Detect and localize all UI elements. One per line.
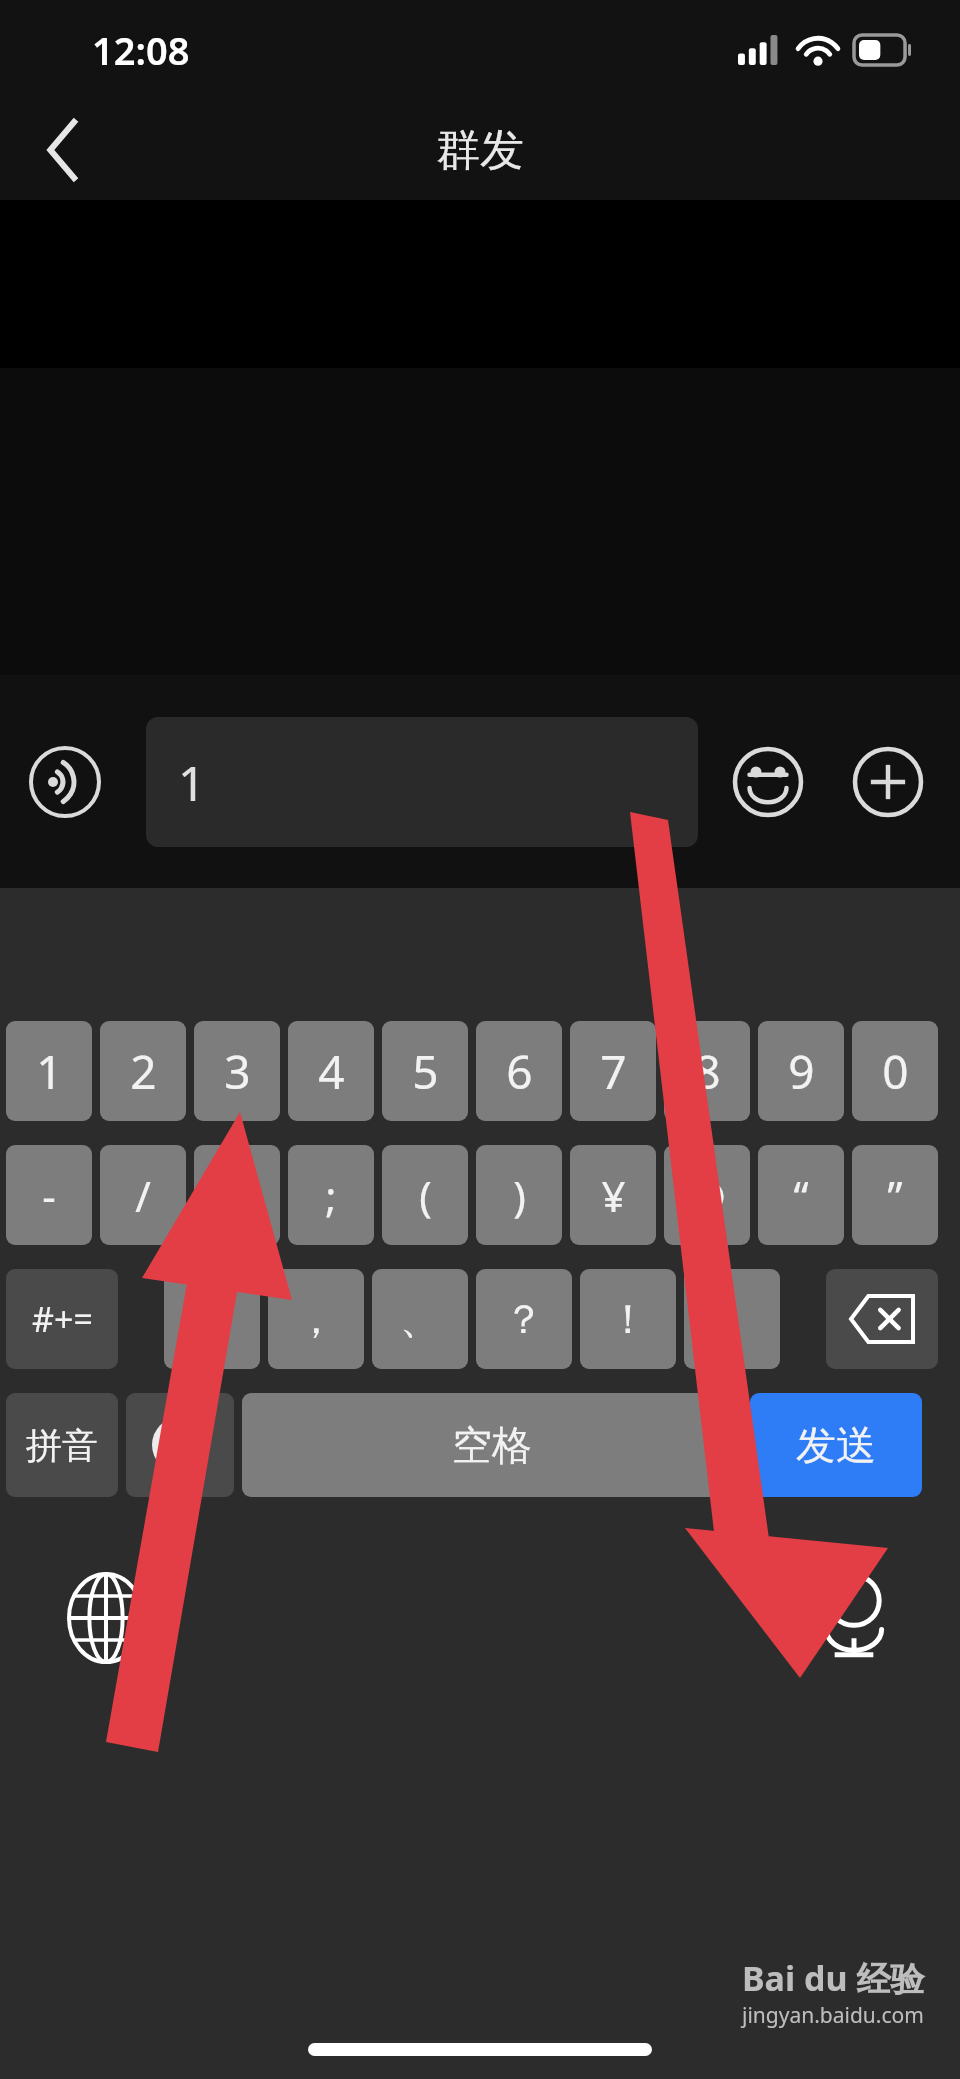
button[interactable]: 。: [164, 1269, 260, 1369]
button[interactable]: ！: [580, 1269, 676, 1369]
staticText: 12:08: [92, 24, 190, 76]
button[interactable]: Voice input: [20, 737, 110, 827]
button[interactable]: 、: [372, 1269, 468, 1369]
staticText: (: [419, 1167, 432, 1224]
staticText: 空格: [452, 1420, 532, 1470]
staticText: 拼音: [26, 1423, 98, 1468]
button[interactable]: #+=: [6, 1269, 118, 1369]
button[interactable]: ．: [684, 1269, 780, 1369]
staticText: 5: [412, 1040, 439, 1103]
button[interactable]: 3: [194, 1021, 280, 1121]
button[interactable]: 0: [852, 1021, 938, 1121]
button[interactable]: :: [194, 1145, 280, 1245]
staticText: 6: [506, 1040, 533, 1103]
staticText: Bai du 经验: [742, 1955, 925, 2001]
staticText: ！: [608, 1294, 648, 1344]
staticText: 、: [400, 1294, 440, 1344]
button[interactable]: 7: [570, 1021, 656, 1121]
button[interactable]: “: [758, 1145, 844, 1245]
staticText: ．: [712, 1294, 752, 1344]
button[interactable]: ¥: [570, 1145, 656, 1245]
button[interactable]: 拼音: [6, 1393, 118, 1497]
button[interactable]: 5: [382, 1021, 468, 1121]
button[interactable]: 9: [758, 1021, 844, 1121]
button[interactable]: 4: [288, 1021, 374, 1121]
button[interactable]: ;: [288, 1145, 374, 1245]
button[interactable]: ，: [268, 1269, 364, 1369]
button[interactable]: Delete: [826, 1269, 938, 1369]
button[interactable]: ): [476, 1145, 562, 1245]
staticText: 群发: [436, 123, 524, 178]
staticText: jingyan.baidu.com: [742, 2001, 924, 2030]
staticText: 8: [694, 1040, 721, 1103]
button[interactable]: 1: [146, 717, 698, 847]
staticText: 1: [178, 750, 206, 815]
staticText: 1: [36, 1040, 63, 1103]
button[interactable]: 空格: [242, 1393, 742, 1497]
button[interactable]: 8: [664, 1021, 750, 1121]
staticText: /: [135, 1167, 151, 1224]
staticText: 发送: [796, 1420, 876, 1470]
staticText: “: [793, 1167, 809, 1224]
staticText: ，: [296, 1294, 336, 1344]
staticText: ¥: [601, 1167, 626, 1224]
button[interactable]: 发送: [750, 1393, 922, 1497]
button[interactable]: (: [382, 1145, 468, 1245]
staticText: 。: [192, 1294, 232, 1344]
button[interactable]: Emoji keyboard: [126, 1393, 234, 1497]
button[interactable]: Switch language: [60, 1572, 152, 1664]
staticText: 7: [600, 1040, 627, 1103]
button[interactable]: Back: [24, 110, 104, 190]
button[interactable]: Emoji: [722, 736, 814, 828]
button[interactable]: @: [664, 1145, 750, 1245]
button[interactable]: Voice dictation: [808, 1572, 900, 1664]
staticText: #+=: [32, 1296, 93, 1342]
button[interactable]: 1: [6, 1021, 92, 1121]
staticText: 9: [788, 1040, 815, 1103]
button[interactable]: -: [6, 1145, 92, 1245]
staticText: -: [42, 1167, 56, 1224]
staticText: 2: [130, 1040, 157, 1103]
button[interactable]: ”: [852, 1145, 938, 1245]
button[interactable]: 2: [100, 1021, 186, 1121]
staticText: ): [513, 1167, 526, 1224]
button[interactable]: 6: [476, 1021, 562, 1121]
staticText: @: [688, 1167, 726, 1224]
staticText: ”: [887, 1167, 903, 1224]
button[interactable]: ？: [476, 1269, 572, 1369]
staticText: 4: [318, 1040, 345, 1103]
button[interactable]: /: [100, 1145, 186, 1245]
staticText: 0: [882, 1040, 909, 1103]
staticText: 3: [224, 1040, 251, 1103]
staticText: ;: [325, 1167, 337, 1224]
button[interactable]: More options: [842, 736, 934, 828]
staticText: ？: [504, 1294, 544, 1344]
